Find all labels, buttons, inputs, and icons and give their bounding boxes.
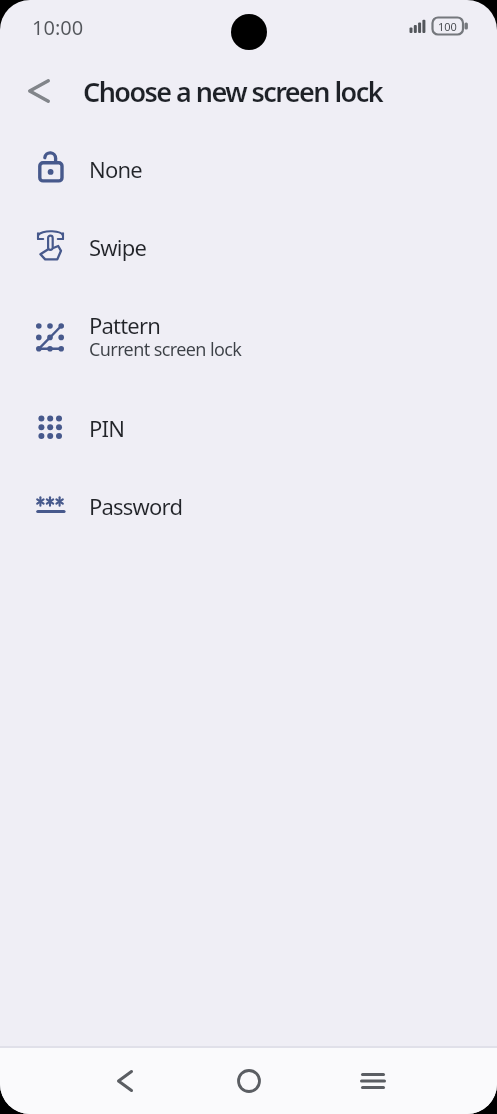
staticText: Swipe [89,232,146,262]
staticText: Password [89,491,183,521]
staticText: 100 [438,19,457,34]
staticText: 10:00 [32,14,84,41]
staticText: Choose a new screen lock [83,73,383,110]
button[interactable]: Swipe [0,208,497,286]
button[interactable] [17,69,61,113]
button[interactable] [187,1048,311,1114]
button[interactable]: None [0,130,497,208]
button[interactable]: PIN [0,389,497,467]
staticText: None [89,154,142,184]
staticText: Pattern [89,310,161,340]
button[interactable] [311,1048,435,1114]
button[interactable] [62,1048,187,1114]
staticText: PIN [89,413,125,443]
staticText: Current screen lock [89,337,242,362]
button[interactable]: Pattern [0,286,497,389]
button[interactable]: Password [0,467,497,545]
